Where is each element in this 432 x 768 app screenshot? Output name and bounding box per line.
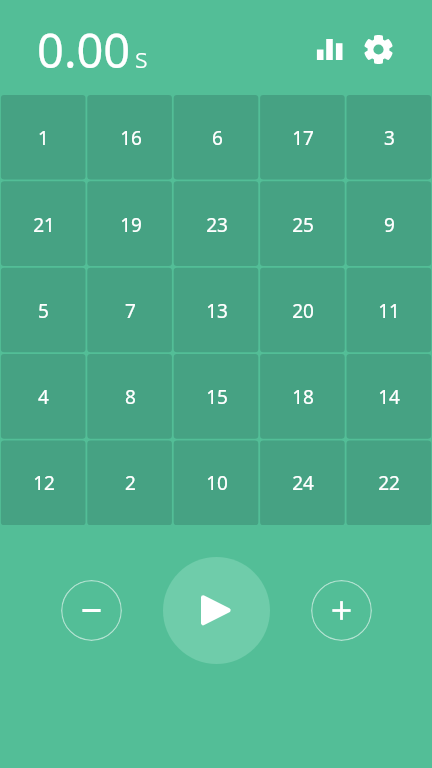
button[interactable]: 19 — [87, 181, 174, 268]
staticText: 20 — [292, 298, 314, 324]
button[interactable]: 11 — [346, 268, 432, 354]
staticText: 22 — [378, 470, 400, 496]
button[interactable]: Settings — [354, 25, 402, 73]
button[interactable]: 23 — [174, 181, 260, 268]
staticText: s — [135, 39, 148, 76]
button[interactable]: Increase size — [311, 580, 372, 641]
staticText: 18 — [292, 384, 314, 410]
staticText: 19 — [120, 212, 142, 238]
button[interactable]: 22 — [346, 440, 432, 526]
staticText: 15 — [206, 384, 228, 410]
staticText: 9 — [384, 212, 395, 238]
button[interactable]: Statistics — [305, 25, 353, 73]
button[interactable]: 4 — [0, 354, 87, 440]
button[interactable]: 24 — [260, 440, 346, 526]
button[interactable]: Start — [163, 557, 270, 664]
staticText: 24 — [292, 470, 314, 496]
button[interactable]: 14 — [346, 354, 432, 440]
button[interactable]: 3 — [346, 94, 432, 181]
staticText: 14 — [378, 384, 400, 410]
staticText: 0.00 — [37, 18, 131, 82]
staticText: 17 — [292, 125, 314, 151]
staticText: 3 — [384, 125, 395, 151]
staticText: 10 — [206, 470, 228, 496]
button[interactable]: 6 — [174, 94, 260, 181]
button[interactable]: 15 — [174, 354, 260, 440]
button[interactable]: 7 — [87, 268, 174, 354]
staticText: 16 — [120, 125, 142, 151]
staticText: 8 — [125, 384, 136, 410]
button[interactable]: 18 — [260, 354, 346, 440]
button[interactable]: 1 — [0, 94, 87, 181]
staticText: 23 — [206, 212, 228, 238]
button[interactable]: 17 — [260, 94, 346, 181]
button[interactable]: 21 — [0, 181, 87, 268]
staticText: 5 — [38, 298, 49, 324]
button[interactable]: Decrease size — [61, 580, 122, 641]
staticText: 7 — [125, 298, 136, 324]
staticText: 11 — [378, 298, 400, 324]
staticText: 12 — [33, 470, 55, 496]
button[interactable]: 12 — [0, 440, 87, 526]
staticText: 21 — [33, 212, 55, 238]
button[interactable]: 10 — [174, 440, 260, 526]
button[interactable]: 2 — [87, 440, 174, 526]
staticText: 13 — [206, 298, 228, 324]
staticText: 2 — [125, 470, 136, 496]
staticText: 4 — [38, 384, 49, 410]
button[interactable]: 13 — [174, 268, 260, 354]
button[interactable]: 8 — [87, 354, 174, 440]
button[interactable]: 9 — [346, 181, 432, 268]
staticText: 25 — [292, 212, 314, 238]
button[interactable]: 25 — [260, 181, 346, 268]
staticText: 1 — [38, 125, 49, 151]
button[interactable]: 5 — [0, 268, 87, 354]
button[interactable]: 20 — [260, 268, 346, 354]
staticText: 6 — [212, 125, 223, 151]
button[interactable]: 16 — [87, 94, 174, 181]
